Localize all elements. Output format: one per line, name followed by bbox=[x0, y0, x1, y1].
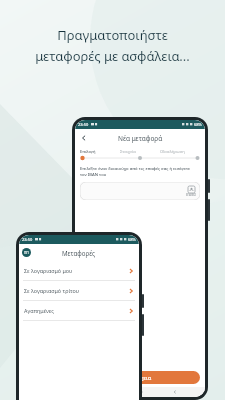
staticText: Επιλογή bbox=[80, 149, 96, 154]
button[interactable]: Contacts bbox=[80, 182, 200, 200]
button[interactable]: Back bbox=[75, 129, 93, 147]
button[interactable]: Back bbox=[170, 387, 180, 397]
staticText: Στοιχεία bbox=[120, 149, 136, 154]
button[interactable]: Αγαπημένες bbox=[19, 301, 139, 321]
button[interactable]: Συνέχεια bbox=[80, 371, 200, 384]
staticText: Πραγματοποιήστε bbox=[57, 26, 168, 44]
staticText: μεταφορές με ασφάλεια... bbox=[35, 47, 190, 65]
staticText: Σε λογαριασμό τρίτου bbox=[24, 287, 80, 294]
staticText: ΕΠΑΦΕΣ bbox=[186, 193, 197, 197]
staticText: Επιλέξτε έναν δικαιούχο από τις επαφές σ… bbox=[80, 166, 190, 172]
button[interactable]: Home bbox=[135, 387, 145, 397]
staticText: τον IBAN του bbox=[80, 172, 107, 178]
staticText: Ολοκλήρωση bbox=[160, 149, 185, 154]
button[interactable]: Σε λογαριασμό μου bbox=[19, 261, 139, 281]
staticText: 68% bbox=[128, 237, 136, 242]
staticText: 23:50 bbox=[22, 237, 33, 242]
staticText: Νέα μεταφορά bbox=[118, 134, 163, 143]
other: Contacts bbox=[186, 186, 197, 197]
staticText: Σε λογαριασμό μου bbox=[24, 267, 73, 274]
button[interactable]: Profile bbox=[22, 248, 31, 257]
staticText: 68% bbox=[194, 122, 202, 127]
staticText: Συνέχεια bbox=[128, 374, 152, 381]
button[interactable]: Σε λογαριασμό τρίτου bbox=[19, 281, 139, 301]
staticText: 23:50 bbox=[78, 122, 89, 127]
staticText: ΠΠ bbox=[24, 251, 29, 255]
staticText: Αγαπημένες bbox=[24, 307, 54, 314]
staticText: Μεταφορές bbox=[62, 249, 96, 257]
